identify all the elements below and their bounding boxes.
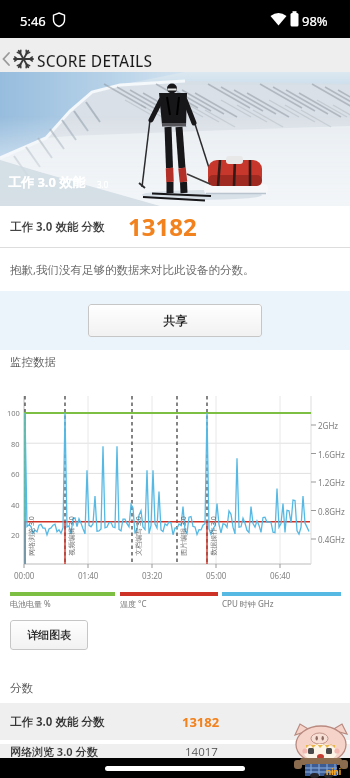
staticText: 5:46: [20, 12, 46, 30]
staticText: 电池电量 %: [10, 598, 51, 609]
staticText: 分数: [10, 681, 33, 695]
staticText: 工作 3.0 效能 分数: [10, 219, 105, 235]
staticText: 100: [7, 408, 20, 418]
staticText: 图片编辑 3.0: [179, 504, 189, 568]
staticText: 共享: [163, 313, 187, 328]
staticText: 详细图表: [27, 628, 71, 642]
staticText: 1.2GHz: [318, 477, 345, 488]
staticText: 03:20: [142, 570, 163, 581]
staticText: 01:40: [78, 570, 99, 581]
button[interactable]: SCORE DETAILS: [0, 38, 350, 72]
staticText: 60: [11, 469, 20, 479]
staticText: nini: [326, 766, 342, 777]
staticText: 40: [11, 500, 20, 510]
staticText: 14017: [185, 744, 218, 758]
button[interactable]: 详细图表: [10, 620, 88, 650]
staticText: 1.6GHz: [318, 449, 345, 460]
staticText: 网络浏览 3.0 分数: [10, 744, 98, 758]
button[interactable]: 共享: [88, 304, 262, 337]
staticText: 0.4GHz: [318, 534, 345, 545]
staticText: 数据操作 3.0: [209, 504, 219, 568]
staticText: SCORE DETAILS: [37, 50, 153, 71]
staticText: 工作 3.0 效能 分数: [10, 714, 105, 730]
staticText: 13182: [128, 210, 197, 243]
staticText: 抱歉,我们没有足够的数据来对比此设备的分数。: [10, 262, 255, 278]
staticText: CPU 时钟 GHz: [222, 598, 274, 609]
staticText: 网络浏览 3.0: [27, 504, 37, 568]
staticText: 0.8GHz: [318, 506, 345, 517]
staticText: 视频编辑 3.0: [67, 504, 77, 568]
button[interactable]: 工作 3.0 效能: [0, 72, 350, 206]
staticText: 3.0: [97, 179, 109, 190]
staticText: 05:00: [206, 570, 227, 581]
staticText: 20: [11, 530, 20, 540]
button[interactable]: 网络浏览 3.0 分数: [0, 744, 350, 758]
staticText: 2GHz: [318, 420, 339, 431]
button[interactable]: 工作 3.0 效能 分数: [0, 703, 350, 740]
staticText: 13182: [182, 713, 220, 731]
staticText: 监控数据: [10, 355, 56, 369]
staticText: 温度 °C: [120, 598, 147, 609]
staticText: 00:00: [14, 570, 35, 581]
staticText: 工作 3.0 效能: [8, 173, 86, 191]
staticText: 06:40: [270, 570, 291, 581]
staticText: 98%: [302, 12, 328, 30]
staticText: 80: [11, 439, 20, 449]
staticText: 文档编写 3.0: [134, 504, 144, 568]
